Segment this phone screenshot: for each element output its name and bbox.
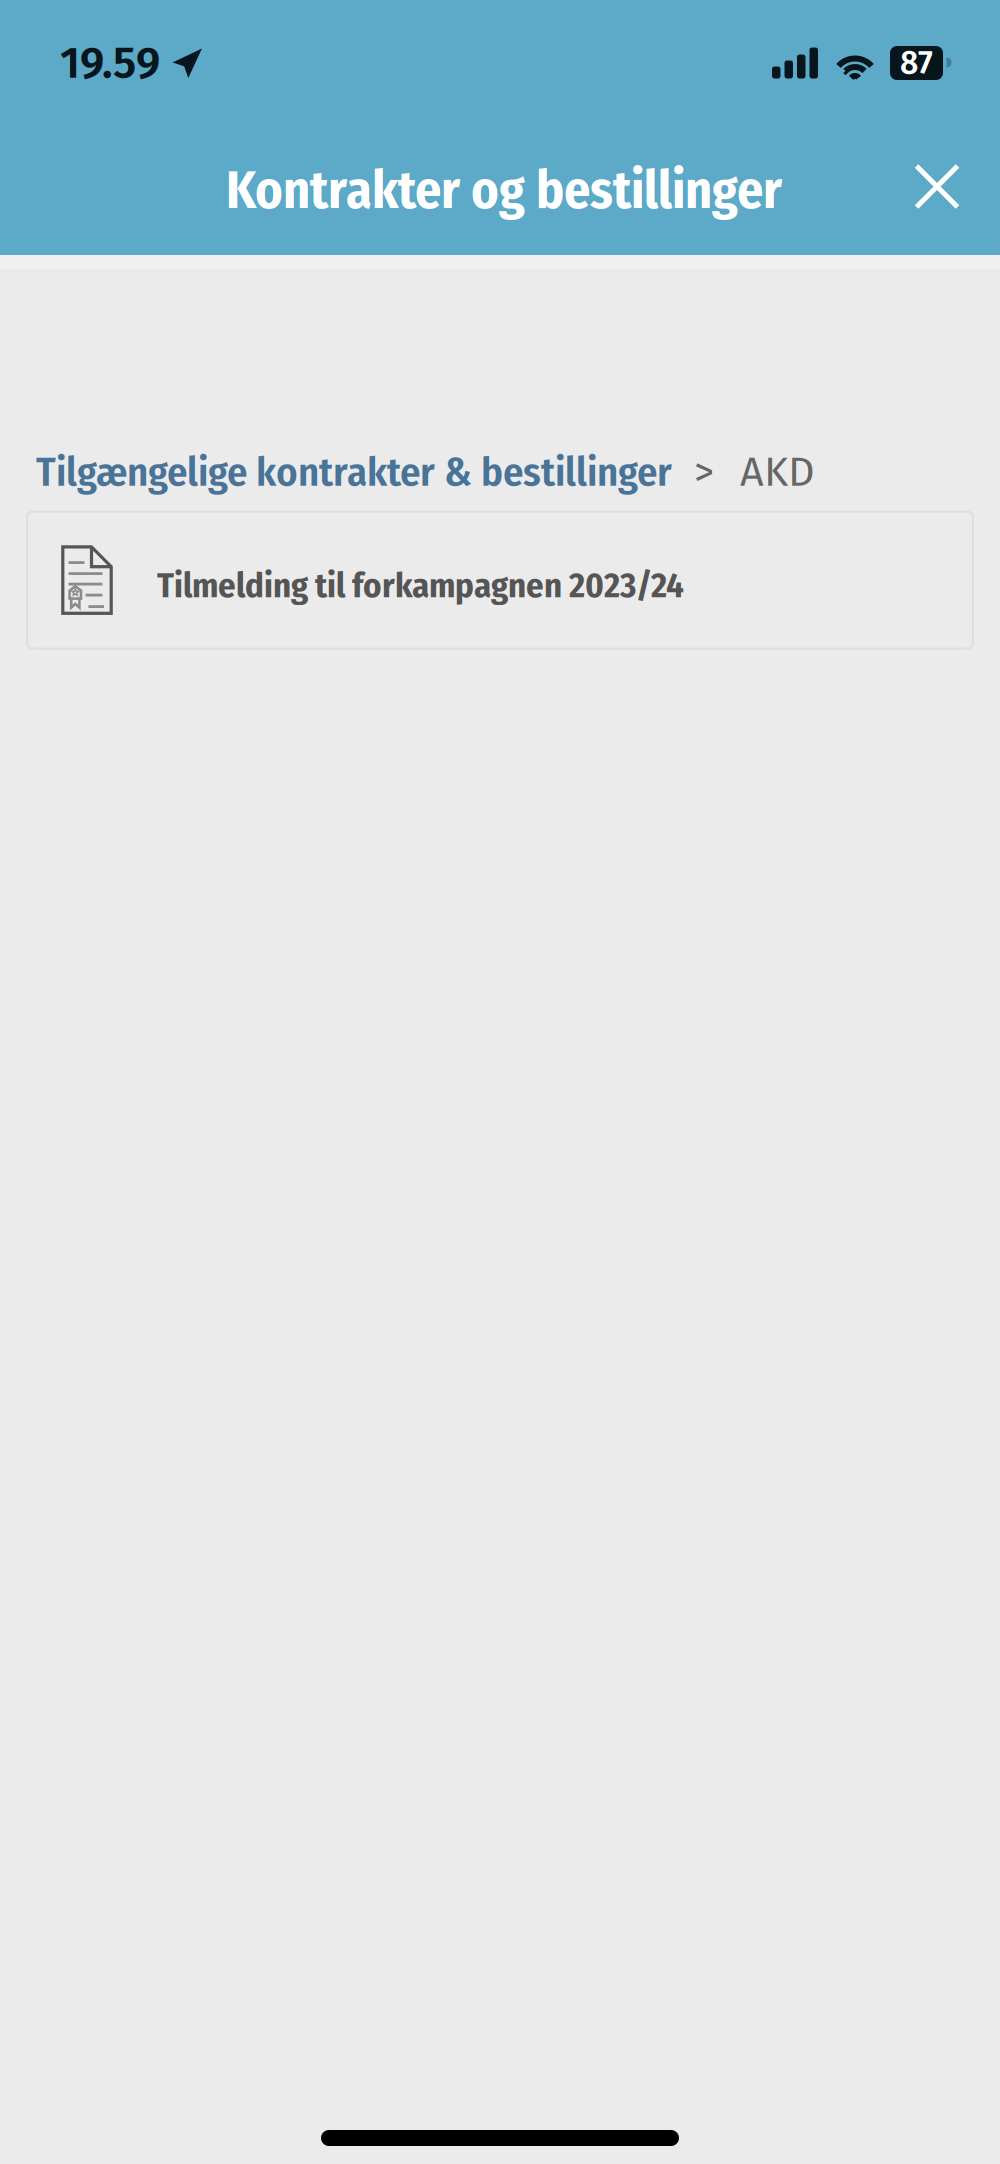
staticText: AKD: [740, 447, 815, 497]
staticText: Kontrakter og bestillinger: [226, 159, 782, 222]
staticText: Tilmelding til forkampagnen 2023/24: [157, 565, 684, 606]
staticText: Tilgængelige kontrakter & bestillinger: [36, 448, 672, 496]
button[interactable]: Tilgængelige kontrakter & bestillinger: [36, 448, 672, 496]
staticText: 19.59: [60, 37, 160, 89]
button[interactable]: Luk: [885, 134, 989, 238]
button[interactable]: Tilmelding til forkampagnen 2023/24: [27, 512, 973, 649]
staticText: >: [694, 448, 714, 496]
staticText: 87: [900, 44, 933, 82]
